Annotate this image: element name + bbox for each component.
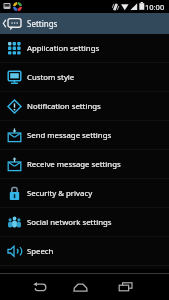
- staticText: Settings: [27, 18, 58, 29]
- button[interactable]: Speech: [0, 237, 169, 266]
- button[interactable]: [73, 282, 88, 292]
- staticText: Send message settings: [27, 130, 112, 141]
- button[interactable]: [118, 282, 134, 293]
- staticText: Speech: [27, 246, 54, 257]
- button[interactable]: Security & privacy: [0, 179, 169, 208]
- button[interactable]: Settings: [0, 13, 169, 34]
- button[interactable]: [33, 282, 48, 292]
- button[interactable]: Notification settings: [0, 92, 169, 121]
- button[interactable]: Social network settings: [0, 208, 169, 237]
- staticText: Notification settings: [27, 101, 101, 112]
- button[interactable]: Send message settings: [0, 121, 169, 150]
- button[interactable]: Custom style: [0, 63, 169, 92]
- staticText: 10:00: [145, 2, 165, 12]
- staticText: Social network settings: [27, 217, 112, 228]
- staticText: Custom style: [27, 72, 75, 83]
- staticText: Security & privacy: [27, 188, 93, 199]
- staticText: Application settings: [27, 43, 100, 54]
- staticText: Receive message settings: [27, 159, 121, 170]
- button[interactable]: Receive message settings: [0, 150, 169, 179]
- button[interactable]: Application settings: [0, 34, 169, 63]
